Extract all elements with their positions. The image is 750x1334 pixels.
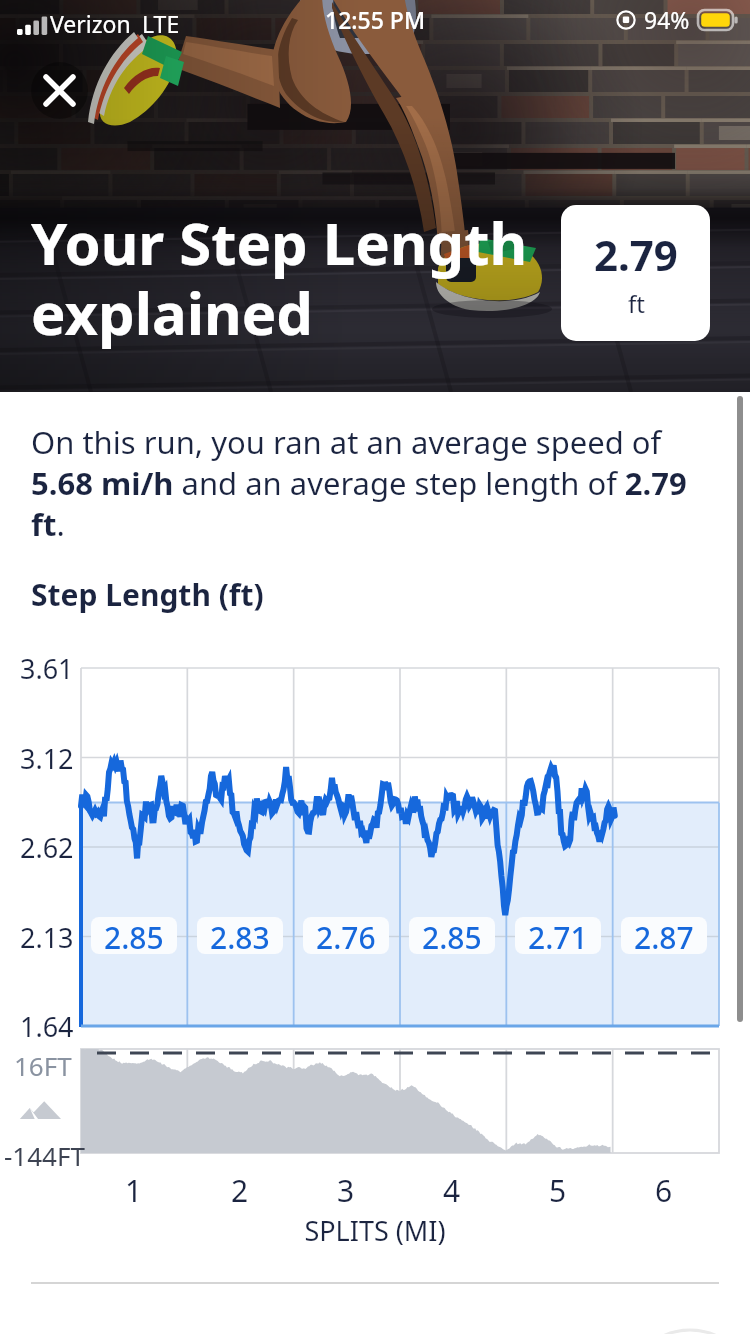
staticText: 2.13 (20, 919, 74, 956)
staticText: 94% (644, 4, 690, 35)
staticText: 2.62 (20, 829, 74, 866)
staticText: 3 (337, 1170, 355, 1211)
staticText: Verizon (50, 8, 131, 39)
staticText: SPLITS (MI) (0, 1212, 750, 1249)
staticText: On this run, you ran at an average speed… (31, 421, 710, 545)
staticText: LTE (142, 8, 180, 39)
staticText: 1.64 (20, 1008, 74, 1045)
staticText: 2.76 (316, 917, 376, 954)
button[interactable]: Close (31, 62, 88, 119)
staticText: 2 (231, 1170, 249, 1211)
staticText: 2.71 (528, 917, 588, 954)
staticText: 16FT (14, 1048, 72, 1083)
staticText: 6 (655, 1170, 673, 1211)
staticText: 2.83 (210, 917, 270, 954)
staticText: 2.87 (634, 917, 694, 954)
staticText: 2.85 (422, 917, 482, 954)
staticText: Step Length (ft) (31, 574, 264, 615)
staticText: Your Step Length explained (31, 203, 528, 352)
staticText: 5 (549, 1170, 567, 1211)
staticText: 2.79 (594, 226, 678, 283)
staticText: 3.61 (20, 650, 74, 687)
staticText: ft (628, 287, 645, 320)
staticText: 3.12 (20, 740, 74, 777)
staticText: 2.85 (104, 917, 164, 954)
staticText: 4 (443, 1170, 461, 1211)
staticText: 1 (125, 1170, 143, 1211)
staticText: -144FT (4, 1138, 85, 1173)
staticText: 12:55 PM (325, 4, 426, 35)
